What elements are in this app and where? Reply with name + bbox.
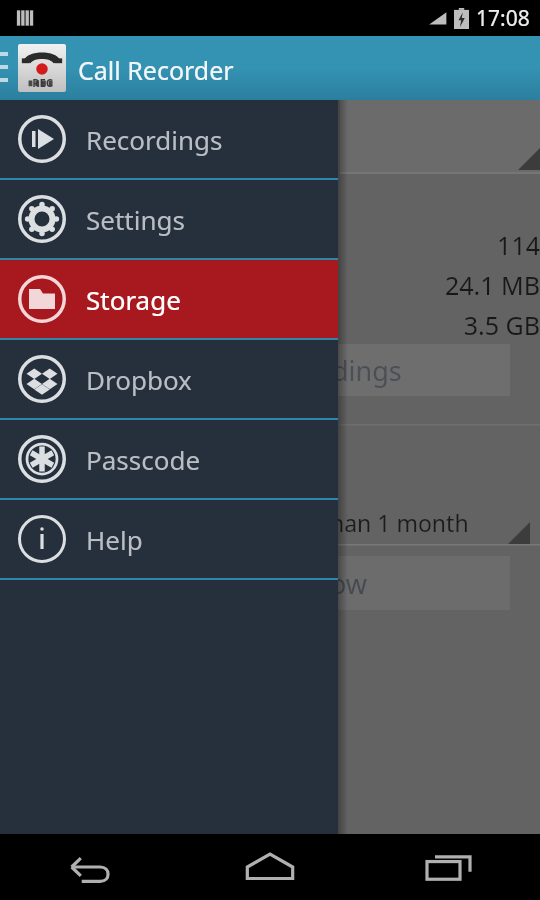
- button[interactable]: Storage: [0, 260, 338, 338]
- staticText: han 1 month: [330, 507, 469, 538]
- button[interactable]: Recent apps: [360, 834, 540, 900]
- button[interactable]: Home: [180, 834, 360, 900]
- staticText: Help: [86, 522, 143, 557]
- button[interactable]: Recordings: [0, 100, 338, 178]
- staticText: dings: [332, 352, 402, 389]
- staticText: Passcode: [86, 442, 201, 477]
- button[interactable]: Dropbox: [0, 340, 338, 418]
- staticText: REC: [32, 75, 53, 90]
- button[interactable]: Help: [0, 500, 338, 578]
- button[interactable]: Settings: [0, 180, 338, 258]
- staticText: Settings: [86, 202, 185, 237]
- staticText: Dropbox: [86, 362, 192, 397]
- staticText: 3.5 GB: [340, 308, 540, 342]
- staticText: 17:08: [476, 4, 530, 33]
- button[interactable]: Back: [0, 834, 180, 900]
- button[interactable]: dings: [330, 344, 510, 396]
- button[interactable]: ow: [330, 556, 510, 610]
- staticText: 24.1 MB: [340, 268, 540, 302]
- button[interactable]: han 1 month: [330, 500, 540, 544]
- staticText: Storage: [86, 282, 181, 317]
- button[interactable]: Passcode: [0, 420, 338, 498]
- staticText: 114: [340, 228, 540, 262]
- button[interactable]: Open navigation drawer: [0, 36, 18, 100]
- staticText: Call Recorder: [78, 53, 234, 87]
- staticText: Recordings: [86, 122, 223, 157]
- staticText: ow: [330, 565, 368, 602]
